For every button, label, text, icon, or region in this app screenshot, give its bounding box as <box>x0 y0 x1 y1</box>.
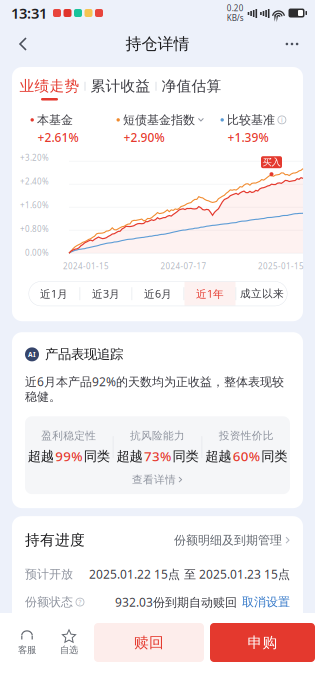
staticText: 2025.01.22 15点 至 2025.01.23 15点 <box>89 566 290 582</box>
button[interactable]: 份额明细及到期管理 <box>174 533 290 547</box>
staticText: 查看详情 <box>132 473 176 486</box>
staticText: 超越 <box>28 448 54 464</box>
staticText: 抗风险能力 <box>130 429 185 442</box>
staticText: 成立以来 <box>240 287 284 300</box>
staticText: 近1年 <box>196 287 224 301</box>
staticText: KB/s <box>227 12 244 23</box>
staticText: 累计收益 <box>90 77 150 95</box>
staticText: 比较基准 <box>227 112 275 127</box>
staticText: +1.39% <box>227 129 268 145</box>
staticText: +2.40% <box>20 176 49 187</box>
staticText: 份额状态 <box>25 595 73 609</box>
staticText: +2.90% <box>123 129 164 145</box>
staticText: 2024-07-17 <box>160 261 206 271</box>
button[interactable]: 申购 <box>210 623 315 662</box>
button[interactable]: 业绩走势 <box>19 77 79 100</box>
staticText: 申购 <box>247 633 277 651</box>
staticText: 短债基金指数 <box>123 112 195 127</box>
staticText: 0.20 <box>227 3 244 13</box>
staticText: 99% <box>55 447 82 465</box>
button[interactable]: 客服 <box>6 623 48 662</box>
staticText: 持有进度 <box>25 531 85 549</box>
staticText: 产品表现追踪 <box>45 346 123 363</box>
staticText: +0.80% <box>20 224 49 234</box>
staticText: 同类 <box>261 448 287 464</box>
button[interactable]: 近3月 <box>80 282 131 306</box>
staticText: 同类 <box>172 448 198 464</box>
staticText: 取消设置 <box>242 595 290 609</box>
button[interactable]: 查看详情 <box>132 465 183 494</box>
button[interactable]: 取消设置 <box>242 595 290 609</box>
staticText: 净值估算 <box>161 77 221 95</box>
staticText: 0.00% <box>25 247 49 258</box>
staticText: +3.20% <box>20 152 49 163</box>
button[interactable]: 近6月 <box>132 282 183 306</box>
staticText: 近1月 <box>40 287 68 301</box>
staticText: 2024-01-15 <box>63 261 109 271</box>
button[interactable]: More <box>273 26 311 62</box>
button[interactable]: 赎回 <box>94 623 204 662</box>
staticText: 13:31 <box>11 3 47 23</box>
staticText: 2025-01-15 <box>258 261 304 271</box>
staticText: 本基金 <box>37 112 73 127</box>
staticText: 超越 <box>205 448 231 464</box>
staticText: 盈利稳定性 <box>41 429 96 442</box>
button[interactable]: 近1年 <box>184 282 235 306</box>
staticText: 业绩走势 <box>19 77 79 95</box>
staticText: ? <box>78 598 81 606</box>
staticText: i <box>281 115 283 124</box>
staticText: 近3月 <box>92 287 120 301</box>
button[interactable]: 近1月 <box>28 282 79 306</box>
staticText: 赎回 <box>134 633 164 651</box>
staticText: 近6月本产品92%的天数均为正收益，整体表现较稳健。 <box>25 374 284 404</box>
staticText: 超越 <box>116 448 142 464</box>
staticText: 买入 <box>262 156 280 168</box>
staticText: 预计开放 <box>25 567 73 581</box>
button[interactable]: 净值估算 <box>161 77 221 100</box>
staticText: 同类 <box>84 448 110 464</box>
staticText: 近6月 <box>144 287 172 301</box>
button[interactable]: Back <box>4 26 42 62</box>
staticText: +2.61% <box>37 129 78 145</box>
staticText: 73% <box>144 447 171 465</box>
staticText: 投资性价比 <box>219 429 274 442</box>
staticText: 60% <box>233 447 260 465</box>
button[interactable]: 自选 <box>48 623 90 662</box>
button[interactable]: 累计收益 <box>90 77 150 100</box>
staticText: AI <box>28 350 36 359</box>
staticText: 客服 <box>18 644 36 656</box>
staticText: +1.60% <box>20 200 49 210</box>
staticText: 932.03份到期自动赎回 <box>115 594 237 610</box>
staticText: 份额明细及到期管理 <box>174 533 282 547</box>
staticText: 自选 <box>60 644 78 656</box>
button[interactable]: 成立以来 <box>236 282 287 306</box>
staticText: 持仓详情 <box>125 34 189 54</box>
